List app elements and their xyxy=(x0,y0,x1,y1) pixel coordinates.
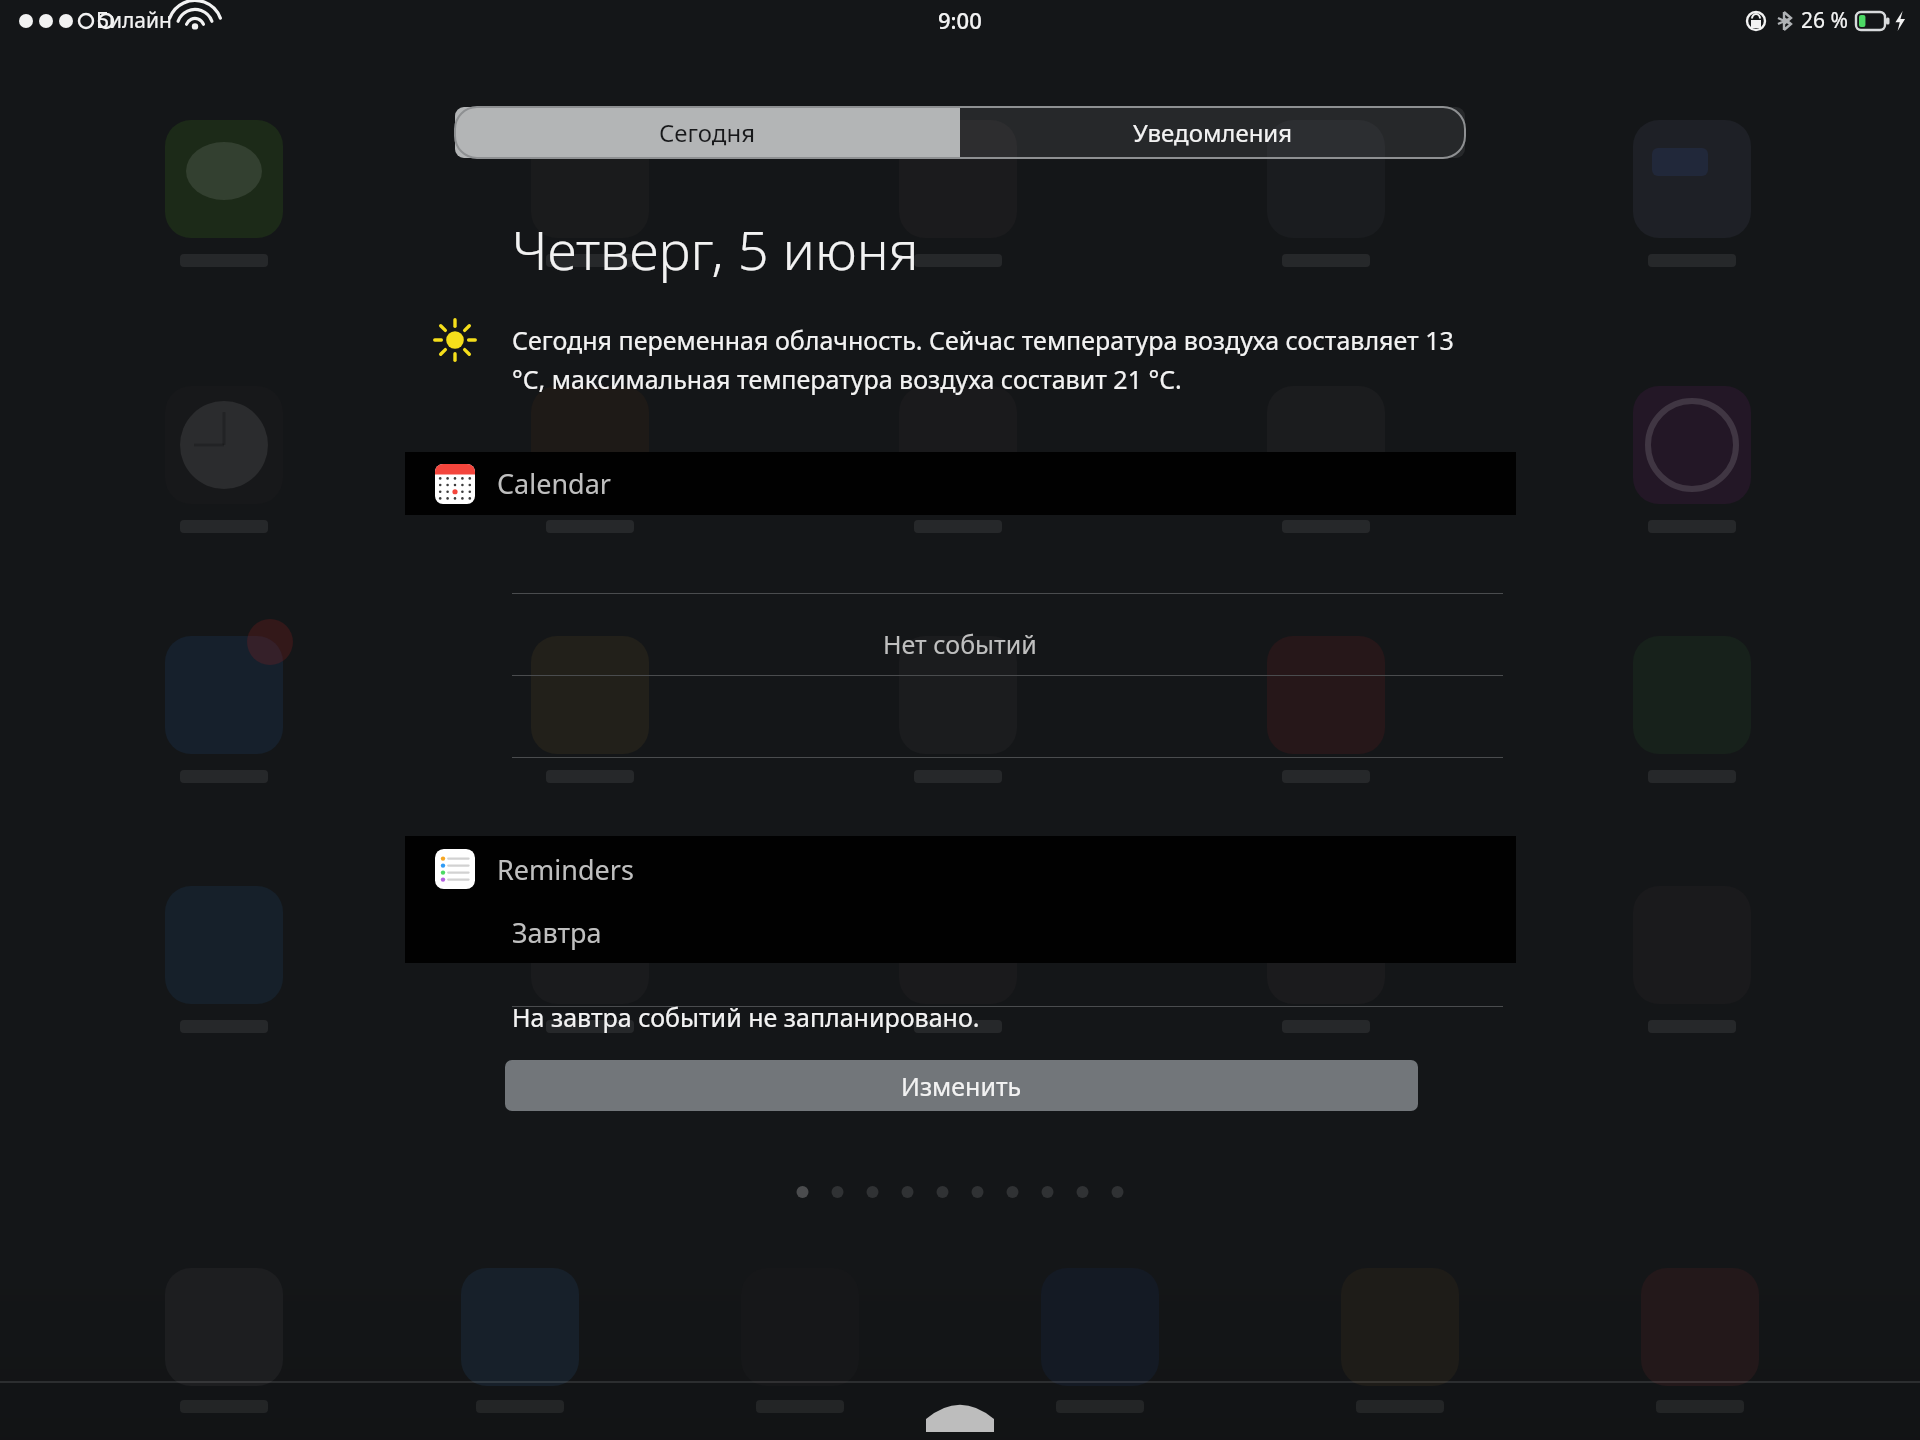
button[interactable]: Calendar xyxy=(405,452,1516,515)
staticText: Сегодня переменная облачность. Сейчас те… xyxy=(512,323,1480,396)
staticText: Calendar xyxy=(497,465,611,502)
button[interactable]: Close Notification Center xyxy=(926,1398,994,1432)
staticText: Нет событий xyxy=(883,627,1037,661)
staticText: Изменить xyxy=(901,1069,1022,1103)
button[interactable]: Reminders xyxy=(405,836,1516,963)
button[interactable]: Уведомления xyxy=(960,107,1465,158)
staticText: Сегодня xyxy=(659,116,756,149)
staticText: Завтра xyxy=(512,914,602,951)
staticText: Четверг, 5 июня xyxy=(512,212,919,286)
staticText: 9:00 xyxy=(938,5,982,35)
button[interactable]: Сегодня xyxy=(455,107,960,158)
staticText: Билайн xyxy=(96,6,172,35)
staticText: Уведомления xyxy=(1133,116,1293,149)
button[interactable]: Изменить xyxy=(505,1060,1418,1111)
staticText: На завтра событий не запланировано. xyxy=(512,1000,980,1034)
staticText: Reminders xyxy=(497,851,634,888)
staticText: 26 % xyxy=(1801,6,1848,35)
